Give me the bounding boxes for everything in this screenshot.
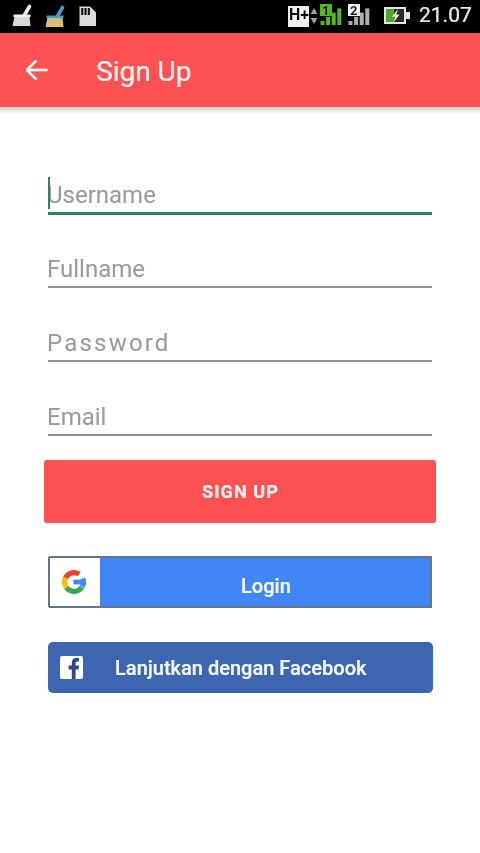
staticText: 21.07 [419, 3, 472, 28]
staticText: Sign Up [96, 55, 192, 88]
staticText: SIGN UP [202, 481, 279, 502]
button[interactable]: SIGN UP [44, 460, 436, 523]
staticText: H+ [289, 5, 310, 24]
button[interactable]: Login [48, 556, 432, 608]
staticText: 1 [322, 3, 330, 15]
button[interactable]: Back [17, 50, 57, 90]
staticText: 2 [350, 3, 358, 15]
staticText: Fullname [47, 255, 145, 283]
staticText: Email [47, 403, 107, 431]
button[interactable]: Lanjutkan dengan Facebook [48, 642, 433, 693]
staticText: Lanjutkan dengan Facebook [115, 656, 367, 679]
staticText: Login [241, 574, 291, 597]
staticText: Password [47, 329, 171, 357]
staticText: Username [47, 181, 156, 209]
